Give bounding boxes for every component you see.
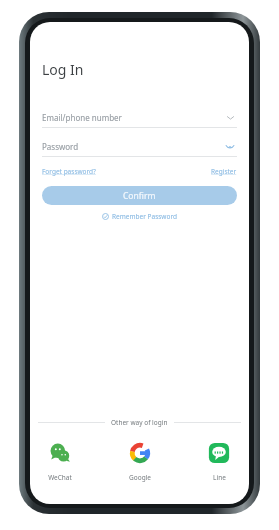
- staticText: WeChat: [48, 473, 72, 482]
- other: Show password: [223, 139, 237, 153]
- button[interactable]: WeChat: [48, 441, 72, 482]
- button[interactable]: Google: [128, 441, 152, 482]
- button[interactable]: Confirm: [42, 186, 237, 205]
- button[interactable]: Remember Password: [30, 212, 249, 221]
- staticText: Email/phone number: [42, 112, 223, 123]
- button[interactable]: Password: [42, 136, 237, 157]
- button[interactable]: Register: [211, 167, 237, 176]
- staticText: Confirm: [123, 190, 156, 202]
- staticText: Line: [213, 473, 226, 482]
- staticText: Forget password?: [42, 167, 96, 176]
- button[interactable]: Line: [207, 441, 231, 482]
- staticText: Other way of login: [111, 418, 168, 427]
- staticText: Password: [42, 141, 223, 152]
- button[interactable]: Email/phone number: [42, 107, 237, 128]
- other: Choose account: [223, 110, 237, 124]
- staticText: Remember Password: [112, 212, 177, 221]
- staticText: Log In: [42, 60, 84, 79]
- staticText: Google: [129, 473, 151, 482]
- button[interactable]: Forget password?: [42, 167, 96, 176]
- staticText: Register: [211, 167, 237, 176]
